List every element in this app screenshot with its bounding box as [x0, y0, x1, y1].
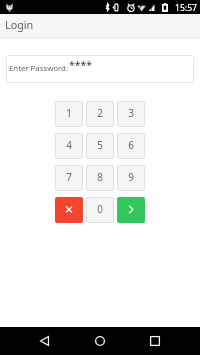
- button[interactable]: 5: [86, 133, 114, 159]
- button[interactable]: 9: [117, 165, 145, 191]
- staticText: Enter Password:: [9, 63, 68, 74]
- staticText: 1: [66, 106, 72, 120]
- staticText: 9: [128, 170, 134, 184]
- button[interactable]: 1: [55, 101, 83, 127]
- staticText: 2: [97, 106, 103, 120]
- button[interactable]: Home: [89, 330, 111, 352]
- button[interactable]: 2: [86, 101, 114, 127]
- button[interactable]: 4: [55, 133, 83, 159]
- button[interactable]: Back: [33, 330, 55, 352]
- staticText: Login: [5, 17, 34, 32]
- staticText: 15:57: [175, 2, 197, 14]
- button[interactable]: 8: [86, 165, 114, 191]
- button[interactable]: Submit: [117, 197, 145, 223]
- staticText: 7: [66, 170, 72, 184]
- staticText: 8: [97, 170, 103, 184]
- staticText: 5: [97, 138, 103, 152]
- button[interactable]: Clear: [55, 197, 83, 223]
- button[interactable]: 7: [55, 165, 83, 191]
- button[interactable]: 0: [86, 197, 114, 223]
- staticText: 4: [66, 138, 72, 152]
- staticText: 6: [128, 138, 134, 152]
- staticText: ****: [69, 58, 93, 72]
- staticText: 0: [97, 202, 103, 216]
- staticText: 3: [128, 106, 134, 120]
- button[interactable]: 6: [117, 133, 145, 159]
- button[interactable]: 3: [117, 101, 145, 127]
- button[interactable]: Enter Password:: [6, 55, 194, 83]
- button[interactable]: Recent apps: [144, 330, 166, 352]
